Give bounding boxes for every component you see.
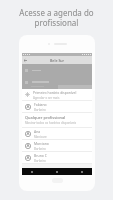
button[interactable]: Fabiano [25, 101, 89, 112]
staticText: Bruno C [34, 153, 47, 158]
staticText: Bele Sur [50, 58, 65, 63]
other: Voltar [24, 59, 27, 62]
button[interactable]: Marciano [25, 140, 89, 151]
staticText: Barbeiro [34, 108, 46, 112]
button[interactable] [25, 79, 89, 85]
other: Primeiro horário [25, 92, 30, 97]
staticText: Barbeiro [34, 159, 46, 163]
button[interactable] [25, 67, 89, 73]
staticText: Qualquer profissional [25, 115, 66, 120]
staticText: Acesse a agenda do profissional [19, 7, 94, 28]
button[interactable]: Ana [25, 128, 89, 139]
staticText: Barbeiro [34, 147, 46, 151]
button[interactable]: Bruno C [25, 152, 89, 163]
staticText: Marciano [34, 141, 49, 146]
staticText: Manicure [34, 135, 47, 139]
staticText: Agendar o ser mais [33, 96, 60, 100]
button[interactable]: Primeiro horário [25, 89, 89, 100]
button[interactable]: Voltar [22, 56, 92, 64]
staticText: Fabiano [34, 102, 47, 107]
staticText: Ana [34, 129, 41, 134]
staticText: Mostrar todos os horários disponíveis [25, 121, 77, 125]
staticText: Primeiro horário disponível [33, 90, 77, 95]
